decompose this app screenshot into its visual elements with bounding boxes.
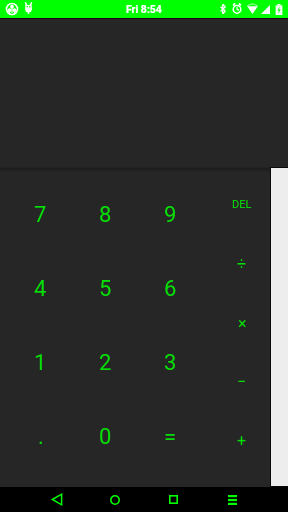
button[interactable]: Back: [27, 487, 86, 512]
staticText: 5: [99, 276, 112, 302]
staticText: +: [237, 431, 247, 450]
button[interactable]: Delete: [213, 175, 271, 234]
button[interactable]: 6: [138, 252, 203, 326]
button[interactable]: 8: [73, 178, 138, 252]
staticText: ÷: [237, 254, 247, 273]
staticText: 7: [34, 202, 47, 228]
button[interactable]: 2: [73, 326, 138, 400]
button[interactable]: Multiply: [213, 294, 271, 353]
staticText: 3: [164, 350, 177, 376]
button[interactable]: 5: [73, 252, 138, 326]
staticText: 0: [99, 424, 112, 450]
staticText: 1: [34, 350, 47, 376]
button[interactable]: Subtract: [213, 352, 271, 411]
button[interactable]: .: [8, 400, 73, 474]
staticText: DEL: [232, 198, 252, 211]
button[interactable]: =: [138, 400, 203, 474]
button[interactable]: Home: [85, 487, 144, 512]
button[interactable]: 9: [138, 178, 203, 252]
staticText: 4: [34, 276, 47, 302]
staticText: 6: [164, 276, 177, 302]
staticText: 2: [99, 350, 112, 376]
staticText: =: [164, 424, 177, 450]
button[interactable]: Menu: [203, 487, 262, 512]
button[interactable]: Divide: [213, 234, 271, 293]
staticText: Fri 8:54: [126, 3, 162, 15]
button[interactable]: 0: [73, 400, 138, 474]
button[interactable]: Add: [213, 411, 271, 470]
button[interactable]: 4: [8, 252, 73, 326]
staticText: −: [237, 372, 247, 391]
button[interactable]: Recent apps: [144, 487, 203, 512]
staticText: ×: [238, 314, 247, 333]
staticText: 9: [164, 202, 177, 228]
button[interactable]: 7: [8, 178, 73, 252]
staticText: .: [38, 424, 44, 450]
staticText: 8: [99, 202, 112, 228]
button[interactable]: 1: [8, 326, 73, 400]
button[interactable]: 3: [138, 326, 203, 400]
